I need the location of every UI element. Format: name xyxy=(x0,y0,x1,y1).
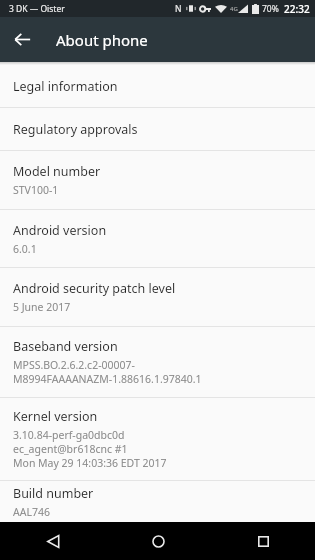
staticText: 3 DK — Oister xyxy=(9,3,65,15)
button[interactable]: Legal information xyxy=(0,65,315,107)
staticText: 3.10.84-perf-ga0dbc0d xyxy=(13,428,125,442)
button[interactable]: Build number xyxy=(0,481,315,522)
button[interactable]: Back xyxy=(26,522,80,560)
staticText: STV100-1 xyxy=(13,183,59,197)
staticText: Build number xyxy=(13,485,94,502)
staticText: 22:32 xyxy=(284,2,310,16)
staticText: Kernel version xyxy=(13,408,98,425)
staticText: About phone xyxy=(56,30,148,50)
staticText: AAL746 xyxy=(13,505,50,519)
staticText: Android security patch level xyxy=(13,280,176,297)
staticText: 6.0.1 xyxy=(13,242,37,256)
staticText: Legal information xyxy=(13,78,118,95)
staticText: MPSS.BO.2.6.2.c2-00007- xyxy=(13,358,135,372)
staticText: N xyxy=(175,3,182,15)
staticText: Model number xyxy=(13,163,101,180)
staticText: M8994FAAAANAZM-1.88616.1.97840.1 xyxy=(13,372,202,386)
button[interactable]: Kernel version xyxy=(0,398,315,480)
staticText: 4G xyxy=(230,5,238,13)
staticText: Mon May 29 14:03:36 EDT 2017 xyxy=(13,456,167,470)
staticText: Baseband version xyxy=(13,338,118,355)
button[interactable]: Baseband version xyxy=(0,327,315,397)
button[interactable]: Navigate up xyxy=(0,17,45,62)
button[interactable]: Regulatory approvals xyxy=(0,108,315,150)
button[interactable]: Model number xyxy=(0,151,315,209)
button[interactable]: Home xyxy=(131,522,185,560)
staticText: Regulatory approvals xyxy=(13,121,138,138)
button[interactable]: Recent apps xyxy=(236,522,290,560)
staticText: Android version xyxy=(13,222,107,239)
button[interactable]: Android version xyxy=(0,210,315,267)
staticText: 70% xyxy=(262,3,279,15)
staticText: ec_agent@br618cnc #1 xyxy=(13,442,128,456)
button[interactable]: Android security patch level xyxy=(0,268,315,326)
staticText: 5 June 2017 xyxy=(13,300,71,314)
